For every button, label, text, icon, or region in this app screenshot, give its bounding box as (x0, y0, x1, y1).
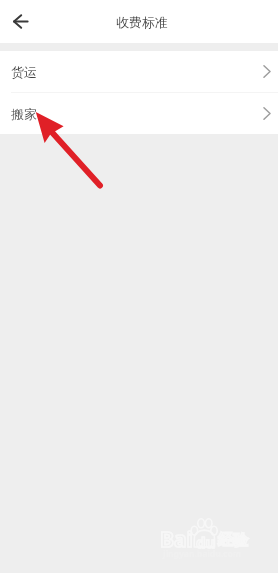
staticText: 收费标准 (116, 14, 168, 30)
button[interactable]: 搬家 (0, 93, 278, 134)
staticText: Bai (160, 525, 193, 554)
staticText: 搬家 (11, 106, 37, 122)
button[interactable]: 货运 (0, 51, 278, 92)
staticText: du (196, 532, 216, 552)
staticText: 货运 (11, 64, 37, 80)
button[interactable]: Back (0, 2, 40, 42)
staticText: 经验 (218, 531, 248, 550)
